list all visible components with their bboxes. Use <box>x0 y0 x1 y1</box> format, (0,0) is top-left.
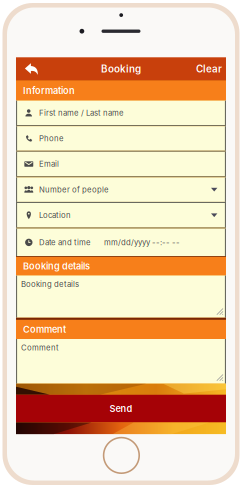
button[interactable]: Back <box>16 57 47 81</box>
staticText: Number of people <box>39 185 109 194</box>
staticText: Comment <box>23 324 66 335</box>
staticText: Location <box>39 211 71 220</box>
button[interactable]: Phone <box>16 126 226 151</box>
staticText: Date and time <box>39 238 91 247</box>
staticText: mm/dd/yyyy --:-- -- <box>104 238 180 247</box>
button[interactable]: Location <box>16 203 226 227</box>
staticText: Booking details <box>23 261 90 272</box>
button[interactable]: Date and time <box>16 229 226 256</box>
button[interactable]: Send <box>16 395 226 422</box>
button[interactable]: Clear <box>196 57 226 81</box>
staticText: Send <box>109 403 132 414</box>
staticText: First name / Last name <box>39 108 124 118</box>
staticText: Information <box>23 85 75 96</box>
staticText: Clear <box>196 63 222 75</box>
staticText: Email <box>39 159 59 169</box>
button[interactable]: Number of people <box>16 177 226 202</box>
staticText: Phone <box>39 134 64 143</box>
button[interactable]: Email <box>16 152 226 176</box>
button[interactable]: First name / Last name <box>16 101 226 125</box>
staticText: Comment <box>21 343 59 352</box>
staticText: Booking <box>101 63 141 75</box>
staticText: Booking details <box>21 279 79 289</box>
